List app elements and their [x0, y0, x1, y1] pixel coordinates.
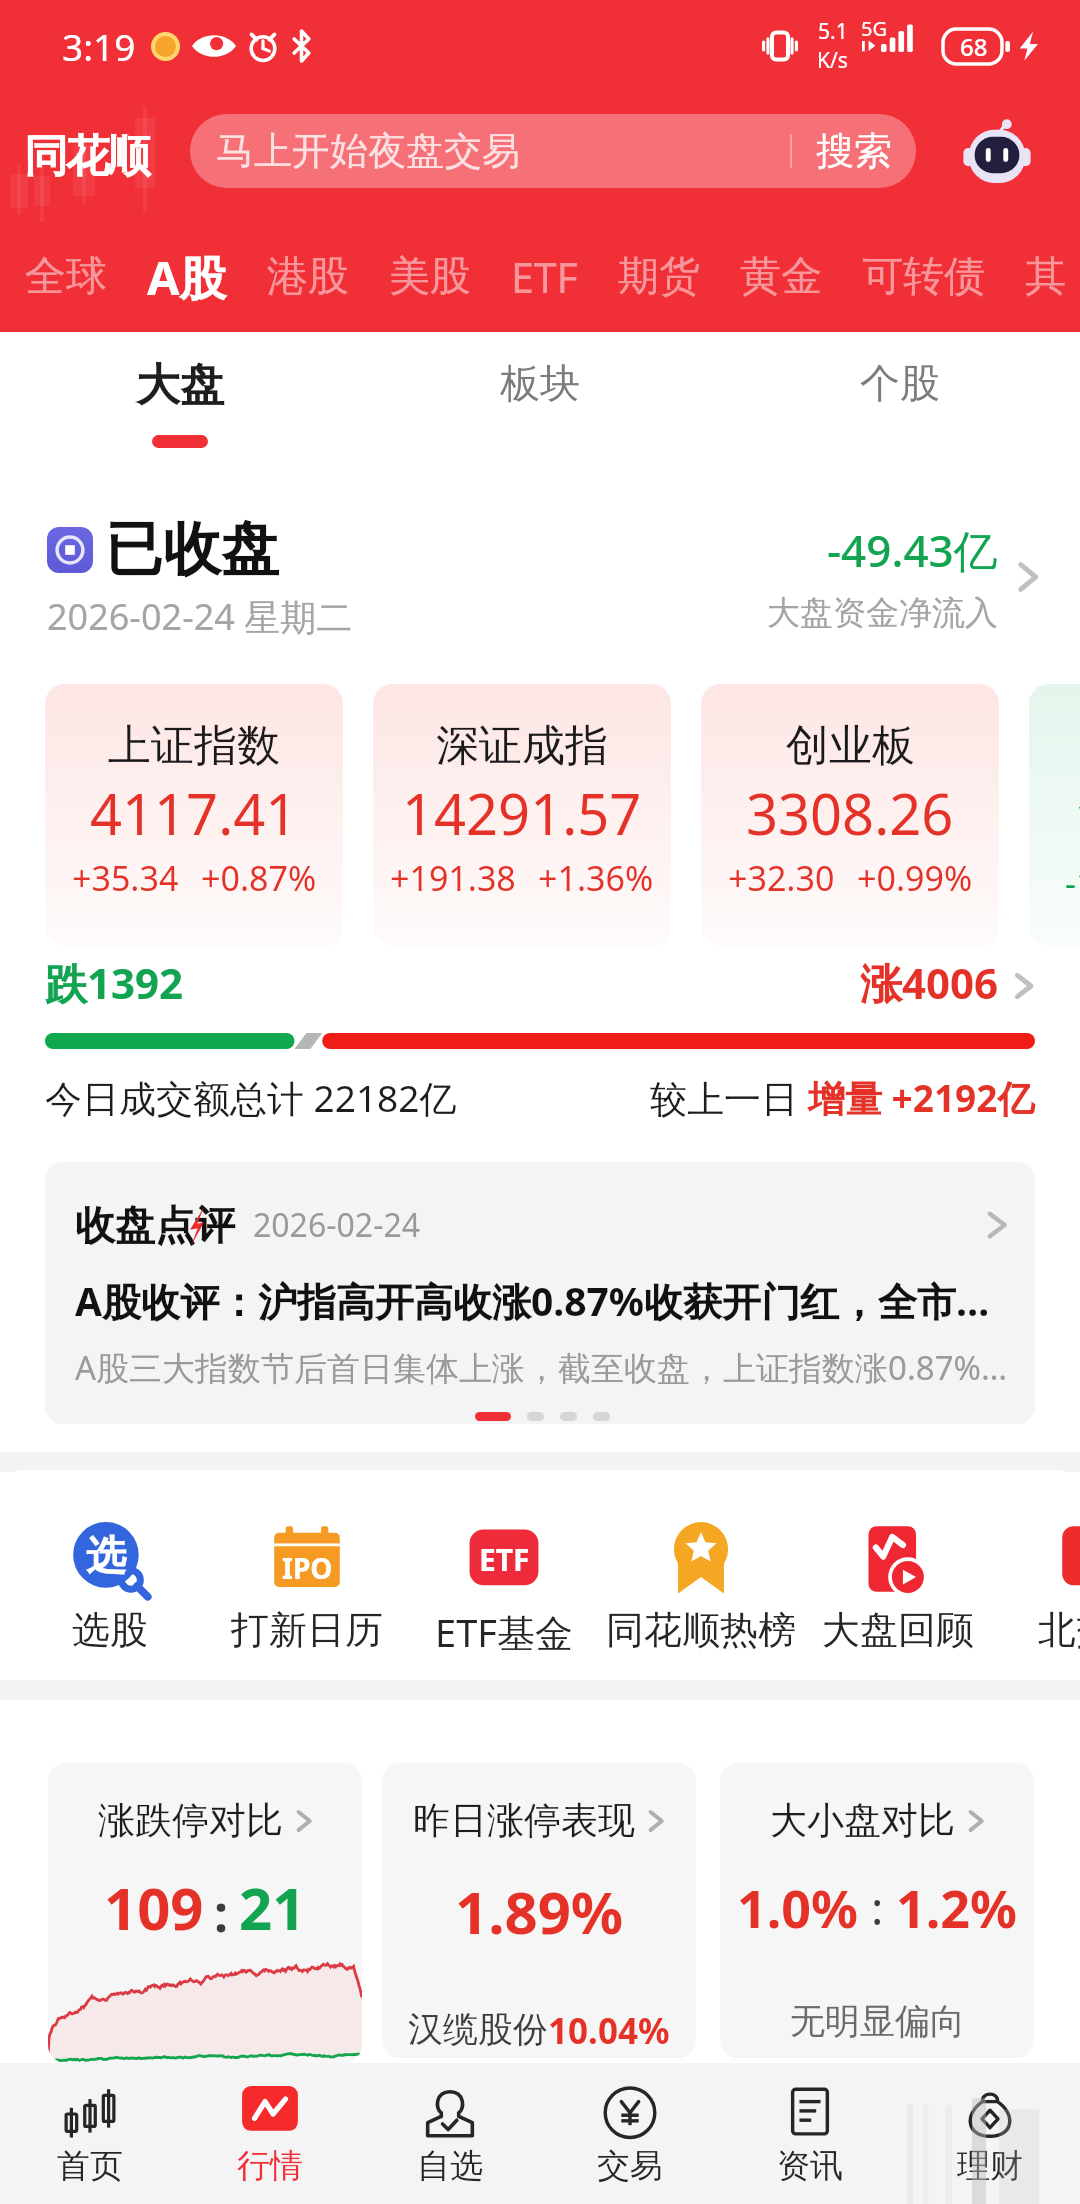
staticText: 全球 [25, 251, 107, 303]
staticText: 68 [960, 30, 988, 63]
staticText: 无明显偏向 [790, 1999, 965, 2043]
staticText: 21 [239, 1868, 306, 1947]
button[interactable]: 资讯 [720, 2063, 900, 2204]
staticText: -49.43亿 [827, 520, 998, 580]
staticText: 大小盘对比 [770, 1797, 955, 1844]
staticText: 板块 [500, 358, 580, 408]
staticText: 打新日历 [231, 1606, 383, 1654]
button[interactable]: 首页 [0, 2063, 180, 2204]
staticText: 跌1392 [45, 954, 184, 1011]
staticText: 资讯 [777, 2145, 843, 2187]
staticText: IPO [282, 1549, 333, 1587]
button[interactable]: 全球 [5, 251, 127, 303]
button[interactable]: ETF [491, 249, 598, 305]
staticText: : [859, 1876, 896, 1939]
staticText: 3:19 [62, 21, 136, 71]
button[interactable]: 其他 [1005, 251, 1080, 303]
button[interactable]: AI assistant [962, 120, 1032, 190]
button[interactable]: 北证50指 [1029, 684, 1080, 946]
button[interactable]: 期货 [598, 251, 720, 303]
staticText: : [214, 1879, 229, 1947]
staticText: 其他 [1025, 251, 1060, 303]
staticText: -11.20 [1065, 860, 1080, 906]
button[interactable]: 选 [12, 1470, 208, 1654]
staticText: 增量 +2192亿 [808, 1072, 1035, 1123]
staticText: 美股 [389, 251, 471, 303]
staticText: 大盘 [136, 358, 224, 413]
staticText: 1.0% [737, 1872, 859, 1943]
button[interactable]: IPO [209, 1470, 405, 1654]
button[interactable]: 创业板 [701, 684, 999, 946]
button[interactable]: 港股 [247, 251, 369, 303]
staticText: 港股 [267, 251, 349, 303]
button[interactable]: 上证指数 [45, 684, 343, 946]
staticText: 同花顺 [24, 129, 149, 184]
staticText: 1428.63 [1074, 780, 1080, 856]
staticText: 大盘资金净流入 [767, 592, 998, 634]
staticText: 2026-02-24 [253, 1203, 421, 1247]
staticText: 个股 [860, 358, 940, 408]
staticText: 今日成交额总计 22182亿 [45, 1072, 457, 1123]
staticText: 涨跌停对比 [98, 1797, 283, 1844]
button[interactable]: 美股 [369, 251, 491, 303]
staticText: A股三大指数节后首日集体上涨，截至收盘，上证指数涨0.87%… [75, 1345, 1008, 1390]
button[interactable]: 深证成指 [373, 684, 671, 946]
staticText: ETF [511, 249, 578, 305]
staticText: 首页 [57, 2145, 123, 2187]
staticText: 1.89% [455, 1872, 624, 1951]
button[interactable]: 板块 [360, 332, 720, 465]
staticText: 昨日涨停表现 [413, 1797, 635, 1844]
button[interactable]: 昨日涨停表现 [382, 1763, 696, 2058]
button[interactable]: 可转债 [842, 251, 1005, 303]
staticText: 较上一日 [650, 1072, 808, 1123]
staticText: 创业板 [786, 719, 915, 773]
staticText: 大盘回顾 [822, 1606, 974, 1654]
staticText: +0.99% [857, 855, 973, 901]
staticText: 期货 [618, 251, 700, 303]
staticText: 可转债 [862, 251, 985, 303]
button[interactable]: 跌1392 [45, 954, 1035, 1049]
staticText: 4117.41 [90, 775, 298, 851]
button[interactable]: 涨跌停对比 [48, 1763, 362, 2063]
button[interactable]: 北交所 [997, 1470, 1080, 1654]
staticText: 选 [86, 1530, 126, 1580]
button[interactable]: A股 [127, 245, 247, 309]
button[interactable]: 自选 [360, 2063, 540, 2204]
staticText: 2026-02-24 星期二 [47, 592, 353, 641]
button[interactable]: 个股 [720, 332, 1080, 465]
staticText: A股 [147, 245, 227, 309]
staticText: 理财 [957, 2145, 1023, 2187]
staticText: +191.38 [390, 855, 516, 901]
button[interactable]: 行情 [180, 2063, 360, 2204]
button[interactable]: 同花顺热榜 [603, 1470, 799, 1654]
staticText: 收盘点评 [75, 1200, 235, 1250]
staticText: ETF基金 [435, 1606, 573, 1658]
button[interactable]: 大盘 [0, 332, 360, 465]
staticText: 上证指数 [108, 719, 280, 773]
staticText: 已收盘 [105, 513, 279, 586]
button[interactable]: 理财 [900, 2063, 1080, 2204]
staticText: 深证成指 [436, 719, 608, 773]
staticText: K/s [817, 46, 848, 75]
button[interactable]: 收盘点评 [45, 1162, 1035, 1424]
staticText: +0.87% [201, 855, 317, 901]
staticText: 3308.26 [746, 775, 954, 851]
staticText: 行情 [237, 2145, 303, 2187]
staticText: 同花顺热榜 [606, 1606, 796, 1654]
staticText: 汉缆股份 [408, 2007, 548, 2051]
button[interactable]: 大盘回顾 [800, 1470, 996, 1654]
button[interactable]: 交易 [540, 2063, 720, 2204]
staticText: 马上开始夜盘交易 [216, 127, 520, 175]
button[interactable]: 马上开始夜盘交易 [190, 114, 916, 188]
staticText: 5.1 [818, 17, 848, 46]
button[interactable]: 大小盘对比 [720, 1763, 1034, 2058]
staticText: 涨4006 [860, 954, 999, 1011]
button[interactable]: ETF [406, 1470, 602, 1658]
staticText: +32.30 [728, 855, 835, 901]
staticText: 搜索 [816, 127, 892, 175]
staticText: A股收评：沪指高开高收涨0.87%收获开门红，全市… [75, 1274, 990, 1327]
button[interactable]: 黄金 [720, 251, 842, 303]
staticText: 1.2% [896, 1872, 1018, 1943]
button[interactable]: 同花顺 [24, 129, 149, 184]
button[interactable]: 已收盘 [0, 507, 1080, 647]
